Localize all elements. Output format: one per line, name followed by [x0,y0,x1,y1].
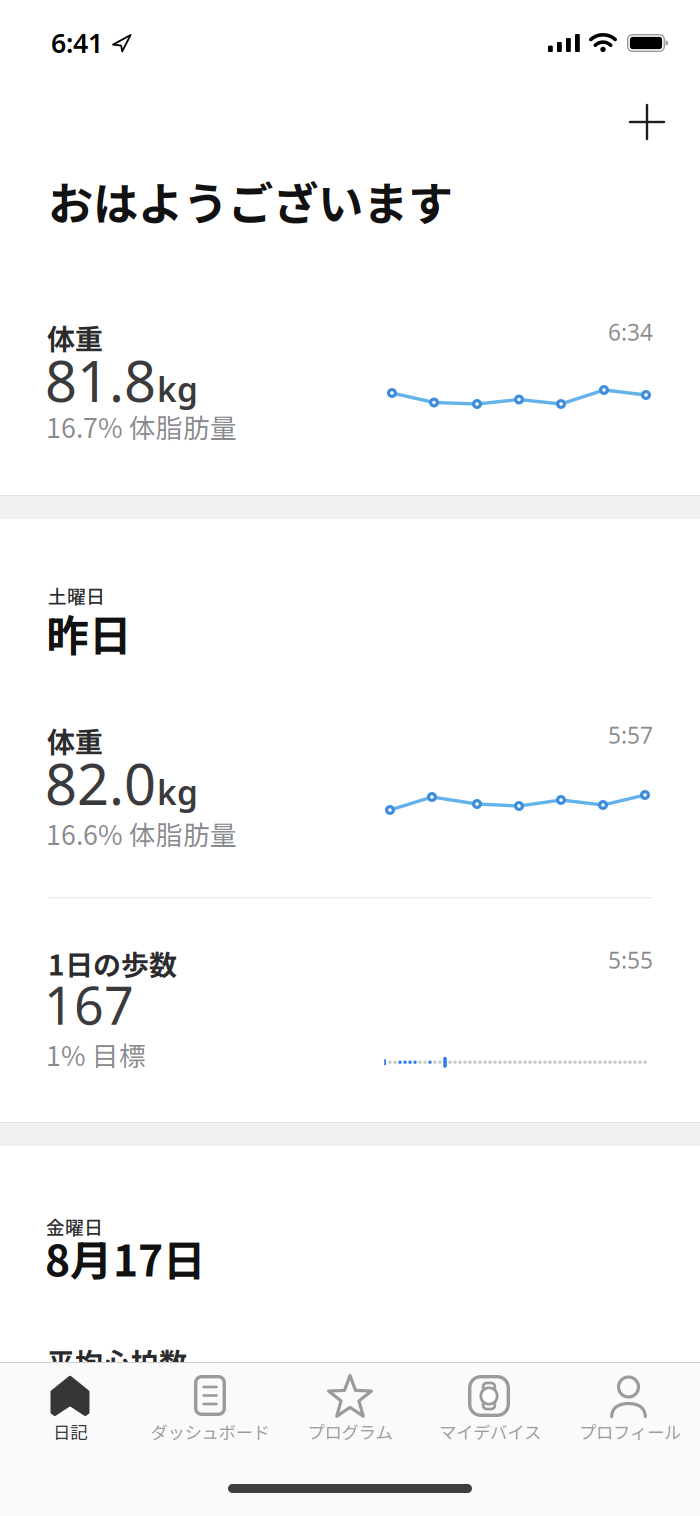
staticText: 5:57 [608,720,653,750]
staticText: 16.7% 体脂肪量 [46,407,237,446]
staticText: 日記 [53,1419,87,1444]
button[interactable]: 体重 [0,713,700,893]
staticText: 体重 [47,720,103,760]
staticText: 81.8 [45,343,156,417]
staticText: プログラム [307,1419,392,1444]
button[interactable]: プロフィール [560,1362,700,1462]
staticText: ダッシュボード [150,1419,269,1444]
staticText: kg [157,367,198,411]
staticText: 1% 目標 [46,1035,146,1074]
staticText: 8月17日 [45,1227,206,1289]
staticText: マイデバイス [439,1419,541,1444]
staticText: 167 [44,970,134,1039]
staticText: 5:55 [608,945,653,975]
staticText: 6:34 [608,317,653,347]
staticText: おはようございます [48,168,453,234]
staticText: 土曜日 [48,582,105,609]
staticText: 平均心拍数 [47,1341,187,1381]
button[interactable]: プログラム [280,1362,420,1462]
button[interactable]: Add [625,100,669,144]
button[interactable]: ダッシュボード [140,1362,280,1462]
staticText: 1日の歩数 [48,943,177,983]
staticText: プロフィール [579,1419,681,1444]
button[interactable]: 日記 [0,1362,140,1462]
staticText: kg [157,770,198,814]
staticText: 昨日 [46,602,132,664]
staticText: 16.6% 体脂肪量 [46,814,237,853]
button[interactable]: 体重 [0,310,700,455]
staticText: 6:41 [51,25,103,60]
staticText: 82.0 [45,746,156,820]
staticText: 体重 [47,317,103,357]
button[interactable]: マイデバイス [420,1362,560,1462]
staticText: 金曜日 [46,1213,103,1240]
button[interactable]: 1日の歩数 [0,936,700,1086]
